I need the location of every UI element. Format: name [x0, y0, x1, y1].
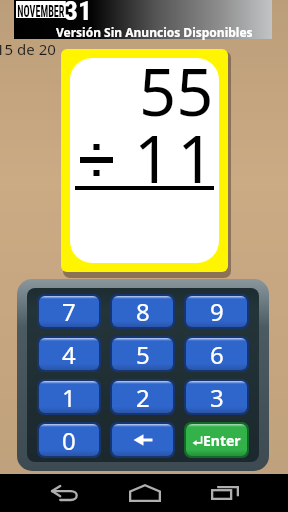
- button[interactable]: 6: [184, 336, 249, 372]
- button[interactable]: 55: [61, 49, 228, 272]
- staticText: 31: [64, 0, 93, 26]
- staticText: 9: [210, 295, 224, 328]
- staticText: 11: [134, 114, 221, 203]
- staticText: 15 de 20: [0, 39, 56, 59]
- staticText: 7: [62, 295, 76, 328]
- staticText: 0: [62, 424, 76, 457]
- button[interactable]: 2: [110, 379, 175, 415]
- button[interactable]: NOVEMBER: [14, 0, 272, 39]
- button[interactable]: 3: [184, 379, 249, 415]
- staticText: Enter: [203, 431, 241, 450]
- button[interactable]: 8: [110, 294, 175, 329]
- staticText: 8: [136, 295, 150, 328]
- button[interactable]: Backspace: [110, 422, 175, 458]
- staticText: 1: [62, 381, 76, 414]
- staticText: 4: [62, 338, 76, 371]
- button[interactable]: Back: [32, 474, 98, 512]
- staticText: Versión Sin Anuncios Disponibles: [56, 24, 253, 40]
- button[interactable]: 7: [37, 294, 101, 329]
- staticText: 5: [136, 338, 150, 371]
- staticText: 6: [210, 338, 224, 371]
- button[interactable]: Enter: [184, 422, 249, 458]
- button[interactable]: Home: [112, 474, 178, 512]
- staticText: 55: [139, 49, 214, 136]
- staticText: 3: [210, 381, 224, 414]
- staticText: 2: [136, 381, 150, 414]
- button[interactable]: 5: [110, 336, 175, 372]
- button[interactable]: Recent apps: [192, 474, 258, 512]
- staticText: NOVEMBER: [17, 1, 65, 18]
- button[interactable]: 9: [184, 294, 249, 329]
- button[interactable]: 4: [37, 336, 101, 372]
- button[interactable]: 1: [37, 379, 101, 415]
- button[interactable]: 0: [37, 422, 101, 458]
